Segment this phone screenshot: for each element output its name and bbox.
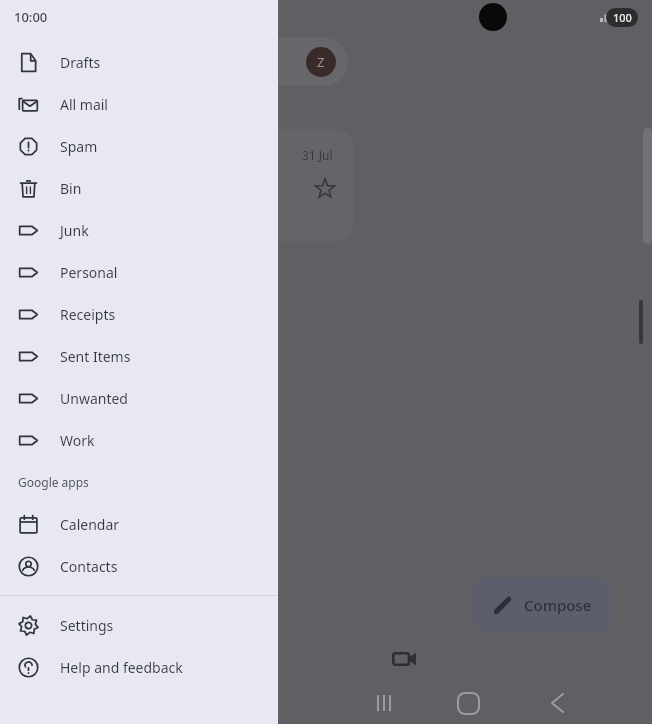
staticText: Sent Items [60, 347, 131, 366]
button[interactable]: Drafts [0, 41, 278, 83]
staticText: Contacts [60, 557, 118, 576]
staticText: Spam [60, 137, 98, 156]
other: Meet [392, 646, 418, 672]
button[interactable]: Bin [0, 167, 278, 209]
staticText: Personal [60, 263, 118, 282]
staticText: Work [60, 431, 95, 450]
button[interactable]: Unwanted [0, 377, 278, 419]
staticText: 100 [613, 10, 632, 25]
staticText: Unwanted [60, 389, 128, 408]
staticText: Drafts [60, 53, 101, 72]
button[interactable]: Help and feedback [0, 646, 278, 688]
staticText: Calendar [60, 515, 120, 534]
button[interactable]: 31 Jul [0, 129, 353, 241]
staticText: Junk [60, 221, 89, 240]
button[interactable]: Junk [0, 209, 278, 251]
staticText: Google apps [18, 474, 89, 490]
button[interactable]: Contacts [0, 545, 278, 587]
staticText: Z [317, 53, 325, 71]
button[interactable]: Work [0, 419, 278, 461]
button[interactable]: Spam [0, 125, 278, 167]
staticText: 31 Jul [302, 147, 333, 163]
staticText: Settings [60, 616, 114, 635]
button[interactable]: Compose [472, 578, 612, 632]
staticText: Bin [60, 179, 82, 198]
staticText: Help and feedback [60, 658, 183, 677]
button[interactable]: Settings [0, 604, 278, 646]
staticText: Compose [524, 595, 592, 615]
button[interactable]: Personal [0, 251, 278, 293]
button[interactable]: Receipts [0, 293, 278, 335]
button[interactable]: All mail [0, 83, 278, 125]
staticText: 10:00 [14, 8, 48, 26]
button[interactable]: Calendar [0, 503, 278, 545]
staticText: Receipts [60, 305, 116, 324]
staticText: All mail [60, 95, 108, 114]
button[interactable]: Z [0, 38, 348, 86]
button[interactable]: Sent Items [0, 335, 278, 377]
